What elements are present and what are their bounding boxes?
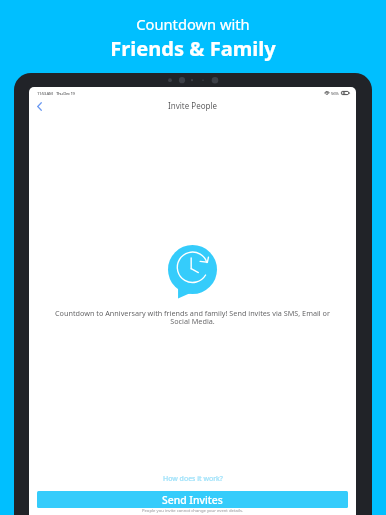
staticText: 56% [331, 90, 339, 96]
staticText: People you invite cannot change your eve… [29, 508, 356, 514]
staticText: Invite People [29, 100, 356, 111]
staticText: Countdown with [0, 14, 386, 34]
staticText: Thu Dec 19 [56, 90, 75, 96]
staticText: 11:53 AM [37, 90, 53, 96]
staticText: Send Invites [162, 493, 223, 507]
staticText: Countdown to Anniversary with friends an… [41, 308, 344, 327]
button[interactable]: Back [32, 101, 47, 112]
staticText: Friends & Family [0, 35, 386, 62]
button[interactable]: How does it work? [29, 472, 356, 485]
button[interactable]: Send Invites [37, 491, 348, 508]
staticText: How does it work? [163, 474, 223, 484]
